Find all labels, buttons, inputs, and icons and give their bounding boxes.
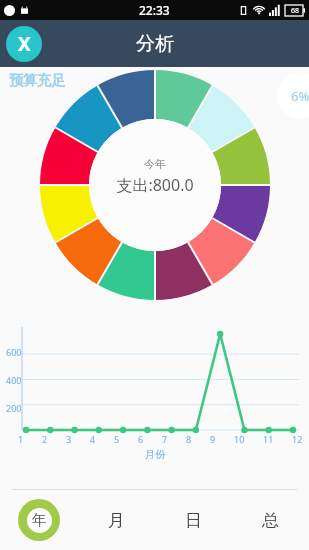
staticText: 2 xyxy=(42,433,48,445)
staticText: 预算充足 xyxy=(9,72,65,90)
staticText: 22:33 xyxy=(139,2,170,18)
staticText: 总 xyxy=(262,510,279,531)
staticText: 5 xyxy=(114,433,120,445)
staticText: 日 xyxy=(185,510,202,531)
staticText: 7 xyxy=(162,433,168,445)
staticText: 6 xyxy=(138,433,144,445)
staticText: 4 xyxy=(90,433,96,445)
staticText: 200 xyxy=(6,402,22,414)
button[interactable]: Profile xyxy=(6,26,42,62)
staticText: 1 xyxy=(18,433,24,445)
staticText: 月 xyxy=(108,510,125,531)
staticText: 分析 xyxy=(136,32,174,56)
button[interactable]: 月 xyxy=(78,490,155,550)
staticText: 11 xyxy=(263,433,274,445)
button[interactable]: 年 xyxy=(0,490,78,550)
staticText: 8 xyxy=(186,433,192,445)
staticText: 年 xyxy=(32,511,47,530)
button[interactable]: 日 xyxy=(155,490,232,550)
button[interactable]: 总 xyxy=(232,490,309,550)
staticText: 10 xyxy=(234,433,245,445)
staticText: 3 xyxy=(66,433,72,445)
staticText: 9 xyxy=(210,433,216,445)
staticText: 支出:800.0 xyxy=(116,174,194,196)
staticText: 6% xyxy=(291,87,309,105)
staticText: 600 xyxy=(6,346,22,358)
staticText: 400 xyxy=(6,374,22,386)
staticText: 今年 xyxy=(144,157,166,171)
staticText: 68 xyxy=(291,6,300,16)
staticText: 月份 xyxy=(145,448,165,461)
staticText: 12 xyxy=(292,433,303,445)
staticText: X xyxy=(18,31,31,57)
